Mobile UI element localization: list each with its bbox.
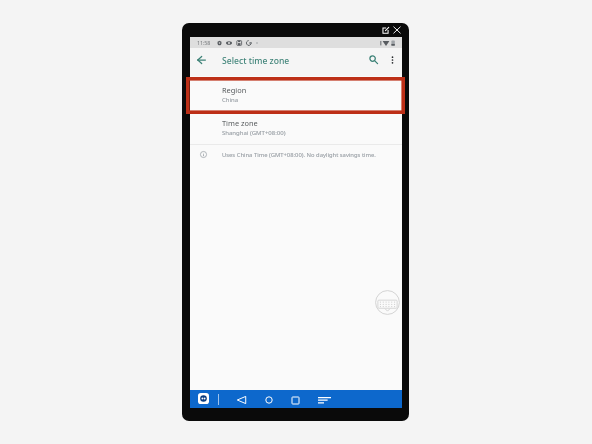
staticText: China [222, 96, 239, 104]
staticText: Shanghai (GMT+08:00) [222, 129, 286, 137]
button[interactable]: Time zone [190, 109, 402, 144]
staticText: 11:58 [197, 39, 211, 46]
button[interactable]: Menu [314, 393, 334, 407]
staticText: Uses China Time (GMT+08:00). No daylight… [222, 151, 376, 159]
button[interactable]: Region [190, 76, 402, 109]
button[interactable]: Close [393, 26, 401, 34]
button[interactable]: Navigate up [193, 51, 210, 68]
button[interactable]: Search [366, 52, 381, 67]
button[interactable]: Recent apps [288, 393, 302, 407]
staticText: Time zone [222, 118, 258, 128]
button[interactable]: Open in new window [382, 26, 390, 34]
button[interactable]: Back [234, 393, 248, 407]
staticText: Select time zone [222, 55, 290, 67]
button[interactable]: Cast screen [198, 393, 209, 404]
button[interactable]: Home [262, 393, 276, 407]
button[interactable]: More options [385, 52, 400, 67]
staticText: Region [222, 85, 247, 95]
